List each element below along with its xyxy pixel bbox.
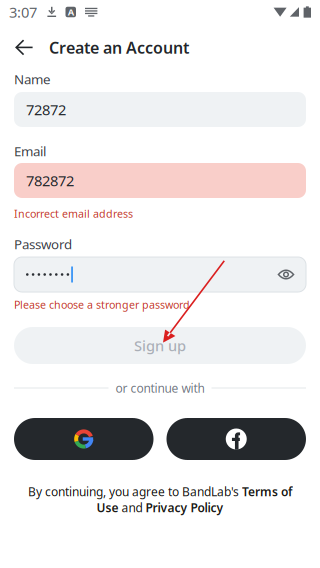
staticText: Please choose a stronger password (14, 297, 190, 312)
staticText: 72872 (26, 100, 66, 119)
staticText: 3:07 (9, 2, 37, 22)
staticText: Sign up (134, 336, 186, 355)
staticText: or continue with (115, 380, 204, 396)
staticText: Name (14, 70, 51, 88)
staticText: By continuing, you agree to BandLab's Te… (28, 483, 292, 499)
staticText: A (68, 6, 74, 18)
staticText: Email (14, 142, 46, 160)
staticText: Password (14, 235, 72, 253)
button[interactable]: Back (6, 31, 42, 63)
button[interactable]: Show password (274, 262, 298, 286)
staticText: Create an Account (49, 37, 189, 58)
staticText: 782872 (26, 171, 74, 190)
button[interactable]: Continue with Google (14, 418, 153, 460)
staticText: Incorrect email address (14, 206, 133, 221)
staticText: Use and Privacy Policy (96, 499, 223, 515)
button[interactable]: Sign up (14, 327, 306, 364)
button[interactable]: Continue with Facebook (166, 418, 306, 460)
